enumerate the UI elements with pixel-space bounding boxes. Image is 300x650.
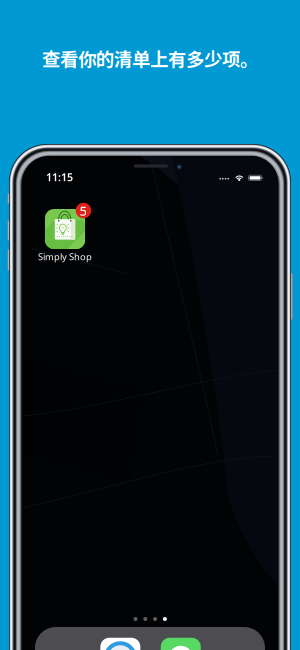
button[interactable]: Safari (101, 638, 140, 650)
button[interactable]: Messages (161, 638, 200, 650)
staticText: 查看你的清单上有多少项。 (42, 45, 258, 72)
staticText: 11:15 (46, 170, 73, 184)
button[interactable]: 5 (30, 209, 100, 265)
staticText: 5 (79, 202, 87, 219)
staticText: Simply Shop (38, 250, 92, 263)
